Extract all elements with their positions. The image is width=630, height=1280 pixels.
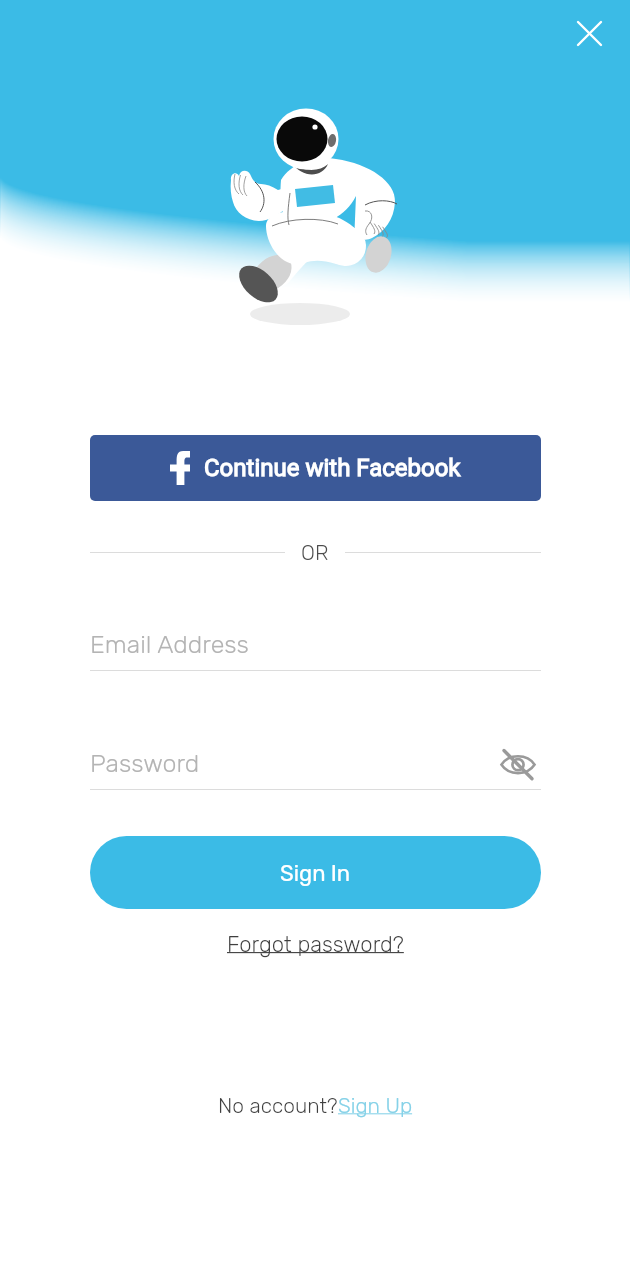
staticText: No account? <box>218 1093 338 1118</box>
button[interactable]: Sign Up <box>338 1093 413 1118</box>
staticText: Password <box>90 749 200 779</box>
staticText: Continue with Facebook <box>204 454 461 482</box>
staticText: Sign In <box>280 860 351 886</box>
button[interactable]: Close <box>561 5 617 61</box>
button[interactable]: Sign In <box>90 836 541 909</box>
button[interactable]: Forgot password? <box>227 931 404 957</box>
button[interactable]: Continue with Facebook <box>90 435 541 501</box>
staticText: Email Address <box>90 630 249 660</box>
button[interactable]: Show password <box>495 741 541 787</box>
staticText: OR <box>301 540 329 565</box>
